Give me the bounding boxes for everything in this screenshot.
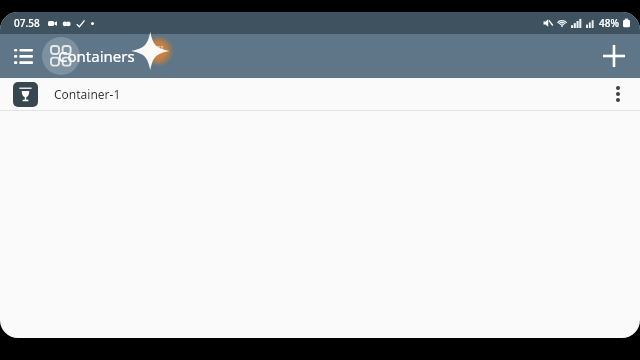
button[interactable]: Container-1 bbox=[0, 78, 640, 110]
button[interactable]: App grid bbox=[42, 37, 80, 75]
staticText: Container-1 bbox=[54, 86, 602, 102]
button[interactable]: More options bbox=[602, 78, 634, 110]
staticText: 01:31 bbox=[148, 44, 164, 52]
staticText: 48% bbox=[599, 16, 619, 30]
button[interactable]: Open navigation menu bbox=[6, 39, 40, 73]
staticText: Containers bbox=[58, 46, 135, 66]
button[interactable]: Add container bbox=[594, 36, 634, 76]
staticText: 07.58 bbox=[14, 16, 40, 30]
